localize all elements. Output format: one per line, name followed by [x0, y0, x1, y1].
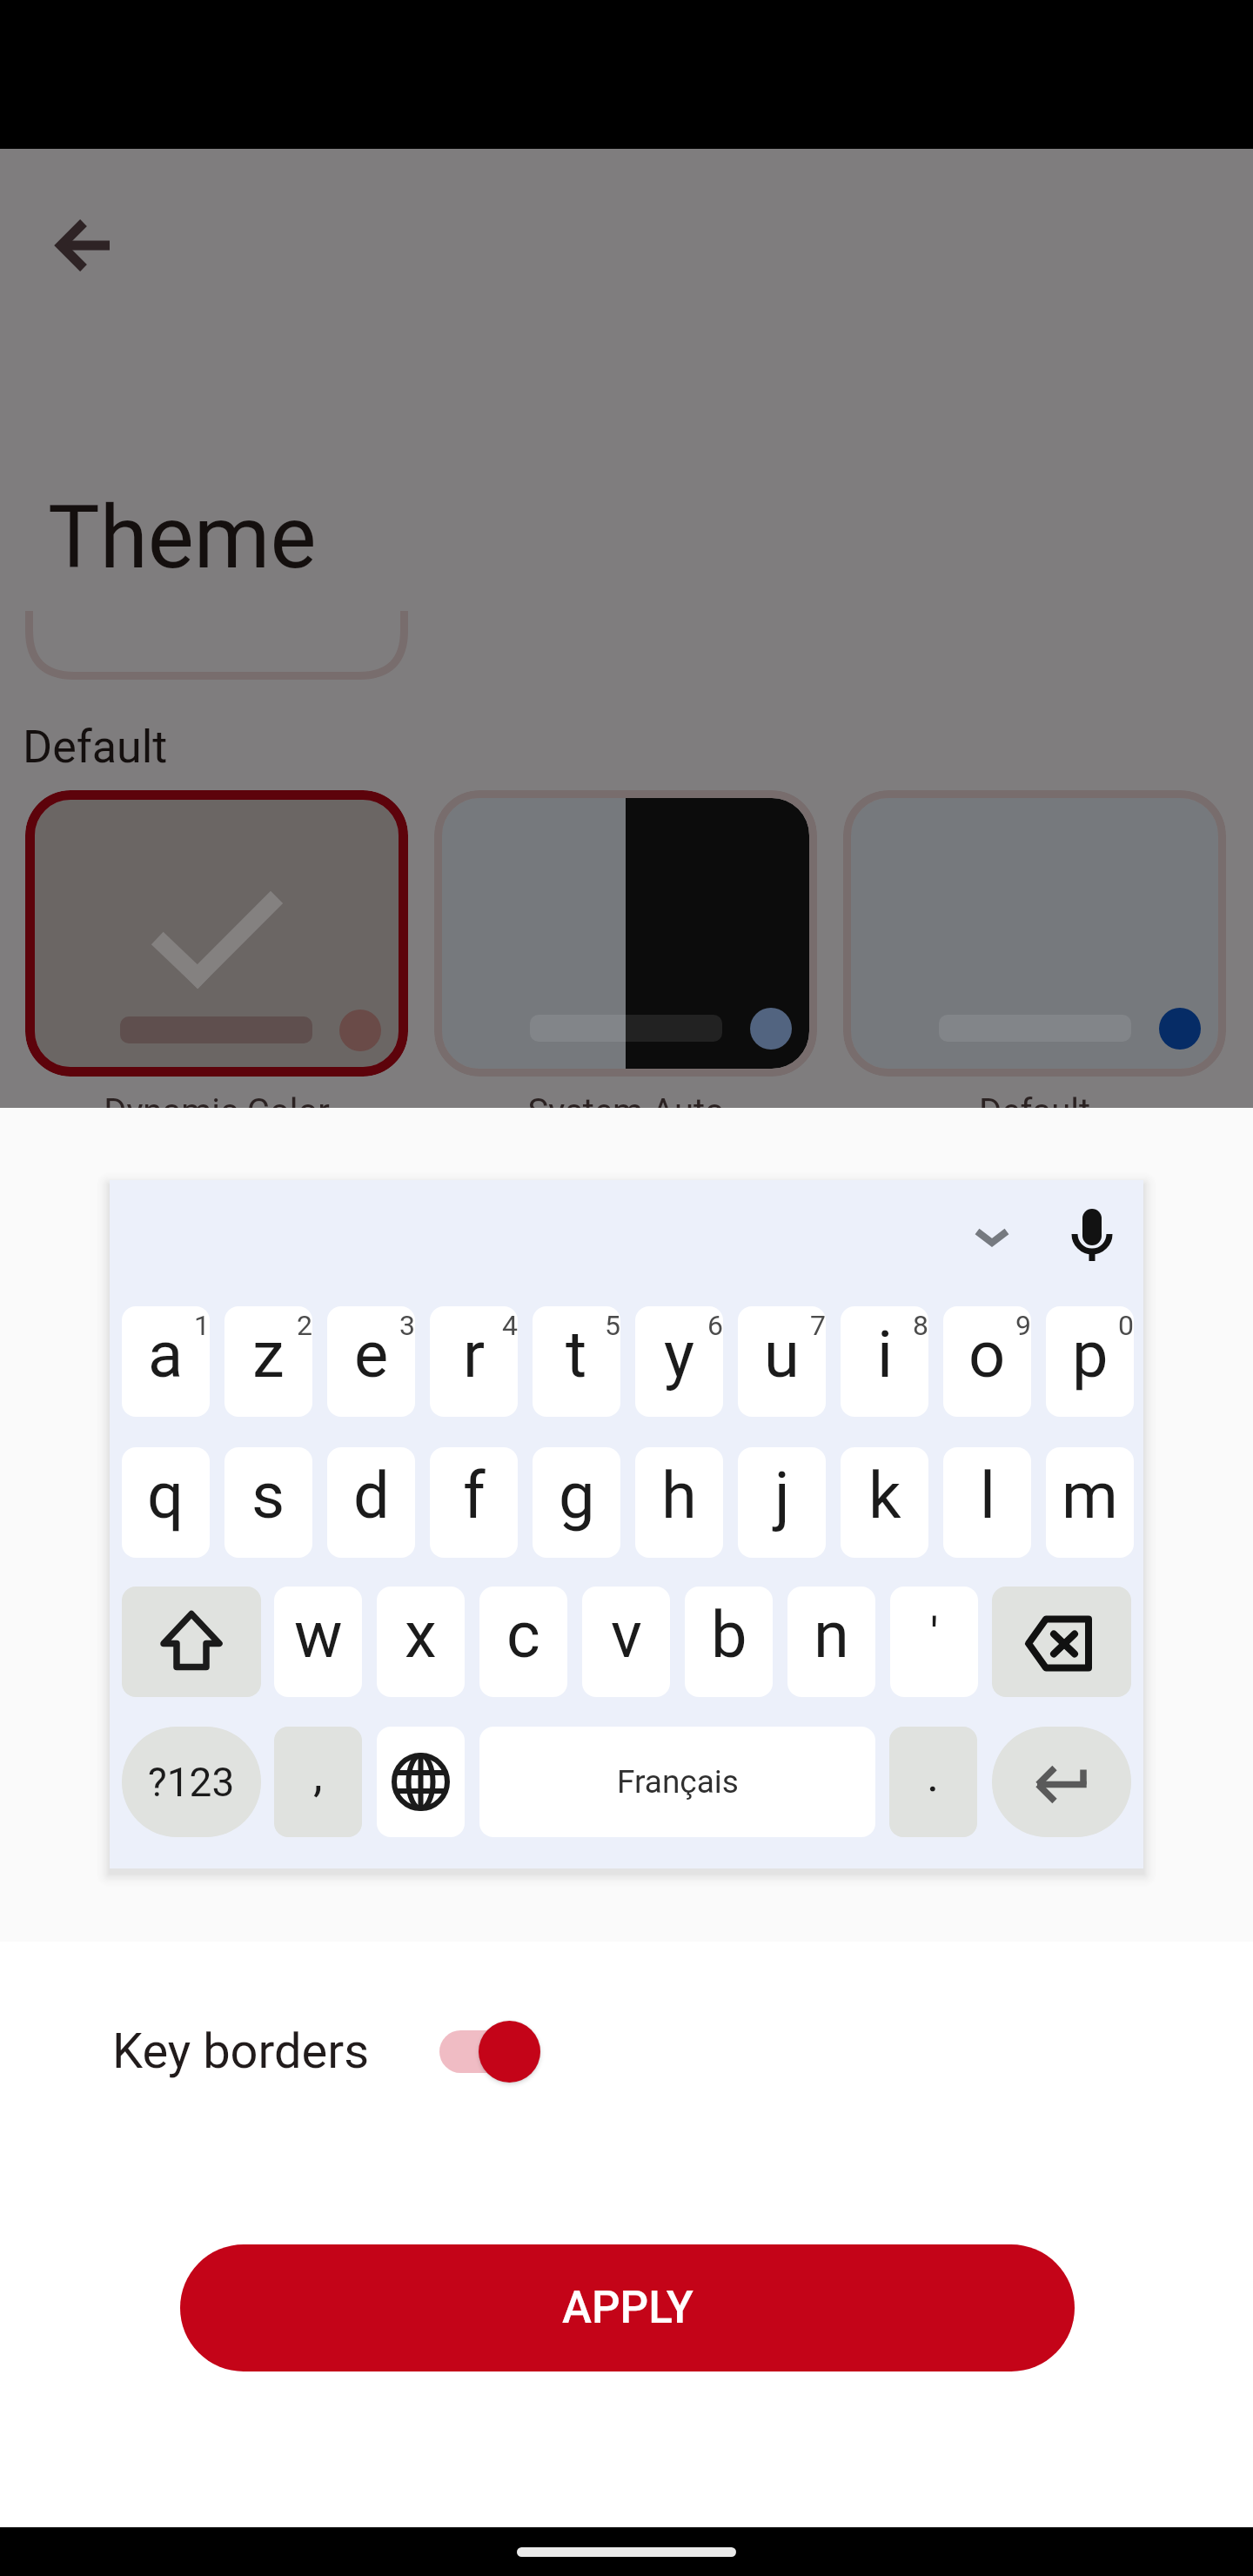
- staticText: ': [930, 1607, 939, 1662]
- staticText: System Auto: [527, 1091, 725, 1108]
- button[interactable]: n: [787, 1587, 875, 1697]
- staticText: 9: [1015, 1309, 1031, 1342]
- button[interactable]: f: [430, 1447, 518, 1558]
- button[interactable]: v: [582, 1587, 670, 1697]
- staticText: j: [774, 1458, 790, 1533]
- staticText: 4: [502, 1309, 518, 1342]
- staticText: i: [877, 1317, 893, 1392]
- button[interactable]: Français: [479, 1727, 875, 1837]
- button[interactable]: m: [1046, 1447, 1134, 1558]
- staticText: h: [661, 1458, 697, 1533]
- staticText: ,: [313, 1748, 323, 1802]
- staticText: .: [927, 1748, 940, 1802]
- button[interactable]: Back: [35, 195, 136, 296]
- button[interactable]: h: [635, 1447, 723, 1558]
- button[interactable]: l: [943, 1447, 1031, 1558]
- button[interactable]: APPLY: [180, 2244, 1075, 2371]
- staticText: n: [814, 1597, 849, 1673]
- button[interactable]: [25, 790, 408, 1077]
- staticText: v: [611, 1597, 642, 1673]
- button[interactable]: Backspace: [992, 1587, 1131, 1697]
- staticText: o: [968, 1317, 1006, 1392]
- staticText: 1: [194, 1309, 210, 1342]
- staticText: w: [294, 1597, 343, 1673]
- button[interactable]: q: [122, 1447, 210, 1558]
- button[interactable]: ,: [274, 1727, 362, 1837]
- button[interactable]: i: [841, 1306, 928, 1417]
- button[interactable]: Key borders: [96, 1994, 566, 2109]
- button[interactable]: r: [430, 1306, 518, 1417]
- staticText: ?123: [148, 1759, 235, 1806]
- button[interactable]: Shift: [122, 1587, 261, 1697]
- button[interactable]: t: [533, 1306, 620, 1417]
- button[interactable]: d: [327, 1447, 415, 1558]
- button[interactable]: .: [889, 1727, 977, 1837]
- staticText: b: [711, 1597, 747, 1673]
- staticText: g: [559, 1458, 595, 1533]
- button[interactable]: p: [1046, 1306, 1134, 1417]
- staticText: Key borders: [112, 2023, 370, 2080]
- staticText: Français: [617, 1763, 739, 1801]
- staticText: e: [354, 1317, 389, 1392]
- button[interactable]: x: [377, 1587, 465, 1697]
- button[interactable]: Enter: [992, 1727, 1131, 1837]
- staticText: p: [1072, 1317, 1109, 1392]
- button[interactable]: a: [122, 1306, 210, 1417]
- staticText: 0: [1118, 1309, 1134, 1342]
- button[interactable]: e: [327, 1306, 415, 1417]
- button[interactable]: Voice input: [1053, 1196, 1131, 1274]
- button[interactable]: j: [738, 1447, 826, 1558]
- staticText: r: [463, 1317, 486, 1392]
- button[interactable]: g: [533, 1447, 620, 1558]
- staticText: f: [463, 1458, 486, 1533]
- button[interactable]: [843, 790, 1226, 1077]
- button[interactable]: k: [841, 1447, 928, 1558]
- staticText: APPLY: [562, 2282, 694, 2334]
- staticText: d: [353, 1458, 390, 1533]
- button[interactable]: b: [685, 1587, 773, 1697]
- staticText: t: [566, 1317, 587, 1392]
- button[interactable]: z: [224, 1306, 312, 1417]
- staticText: m: [1062, 1458, 1118, 1533]
- button[interactable]: [434, 790, 817, 1077]
- button[interactable]: s: [224, 1447, 312, 1558]
- staticText: z: [252, 1317, 285, 1392]
- staticText: 8: [913, 1309, 928, 1342]
- button[interactable]: o: [943, 1306, 1031, 1417]
- staticText: q: [147, 1458, 184, 1533]
- staticText: Default: [979, 1091, 1090, 1108]
- button[interactable]: u: [738, 1306, 826, 1417]
- staticText: s: [251, 1458, 285, 1533]
- staticText: 2: [297, 1309, 312, 1342]
- button[interactable]: y: [635, 1306, 723, 1417]
- staticText: l: [980, 1458, 995, 1533]
- button[interactable]: ': [890, 1587, 978, 1697]
- staticText: y: [664, 1317, 695, 1392]
- staticText: a: [148, 1317, 184, 1392]
- staticText: Default: [23, 721, 168, 774]
- staticText: 3: [399, 1309, 415, 1342]
- staticText: 7: [810, 1309, 826, 1342]
- staticText: k: [868, 1458, 901, 1533]
- button[interactable]: Hide keyboard: [953, 1197, 1031, 1276]
- staticText: c: [506, 1597, 540, 1673]
- button[interactable]: w: [274, 1587, 362, 1697]
- button[interactable]: Change language: [377, 1727, 465, 1837]
- staticText: u: [764, 1317, 800, 1392]
- button[interactable]: ?123: [122, 1727, 261, 1837]
- staticText: 6: [707, 1309, 723, 1342]
- button[interactable]: c: [479, 1587, 567, 1697]
- staticText: x: [405, 1597, 437, 1673]
- staticText: 5: [605, 1309, 620, 1342]
- button[interactable]: [439, 2016, 540, 2086]
- staticText: Theme: [48, 486, 317, 588]
- staticText: Dynamic Color: [104, 1091, 330, 1108]
